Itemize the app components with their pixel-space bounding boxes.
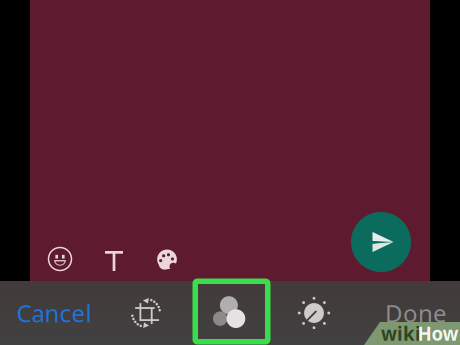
button[interactable]: Filters xyxy=(205,281,255,345)
staticText: How xyxy=(417,321,458,345)
button[interactable]: Send xyxy=(351,212,411,272)
staticText: wiki xyxy=(381,321,421,345)
staticText: Done xyxy=(385,297,447,329)
button[interactable]: Add text xyxy=(95,242,133,280)
button[interactable]: Draw xyxy=(148,241,186,279)
button[interactable]: Add sticker xyxy=(41,240,79,278)
button[interactable]: Adjust xyxy=(289,281,339,345)
button[interactable]: Crop and rotate xyxy=(121,281,171,345)
button[interactable]: Done xyxy=(376,281,456,345)
staticText: Cancel xyxy=(16,297,91,329)
button[interactable]: Cancel xyxy=(6,281,102,345)
